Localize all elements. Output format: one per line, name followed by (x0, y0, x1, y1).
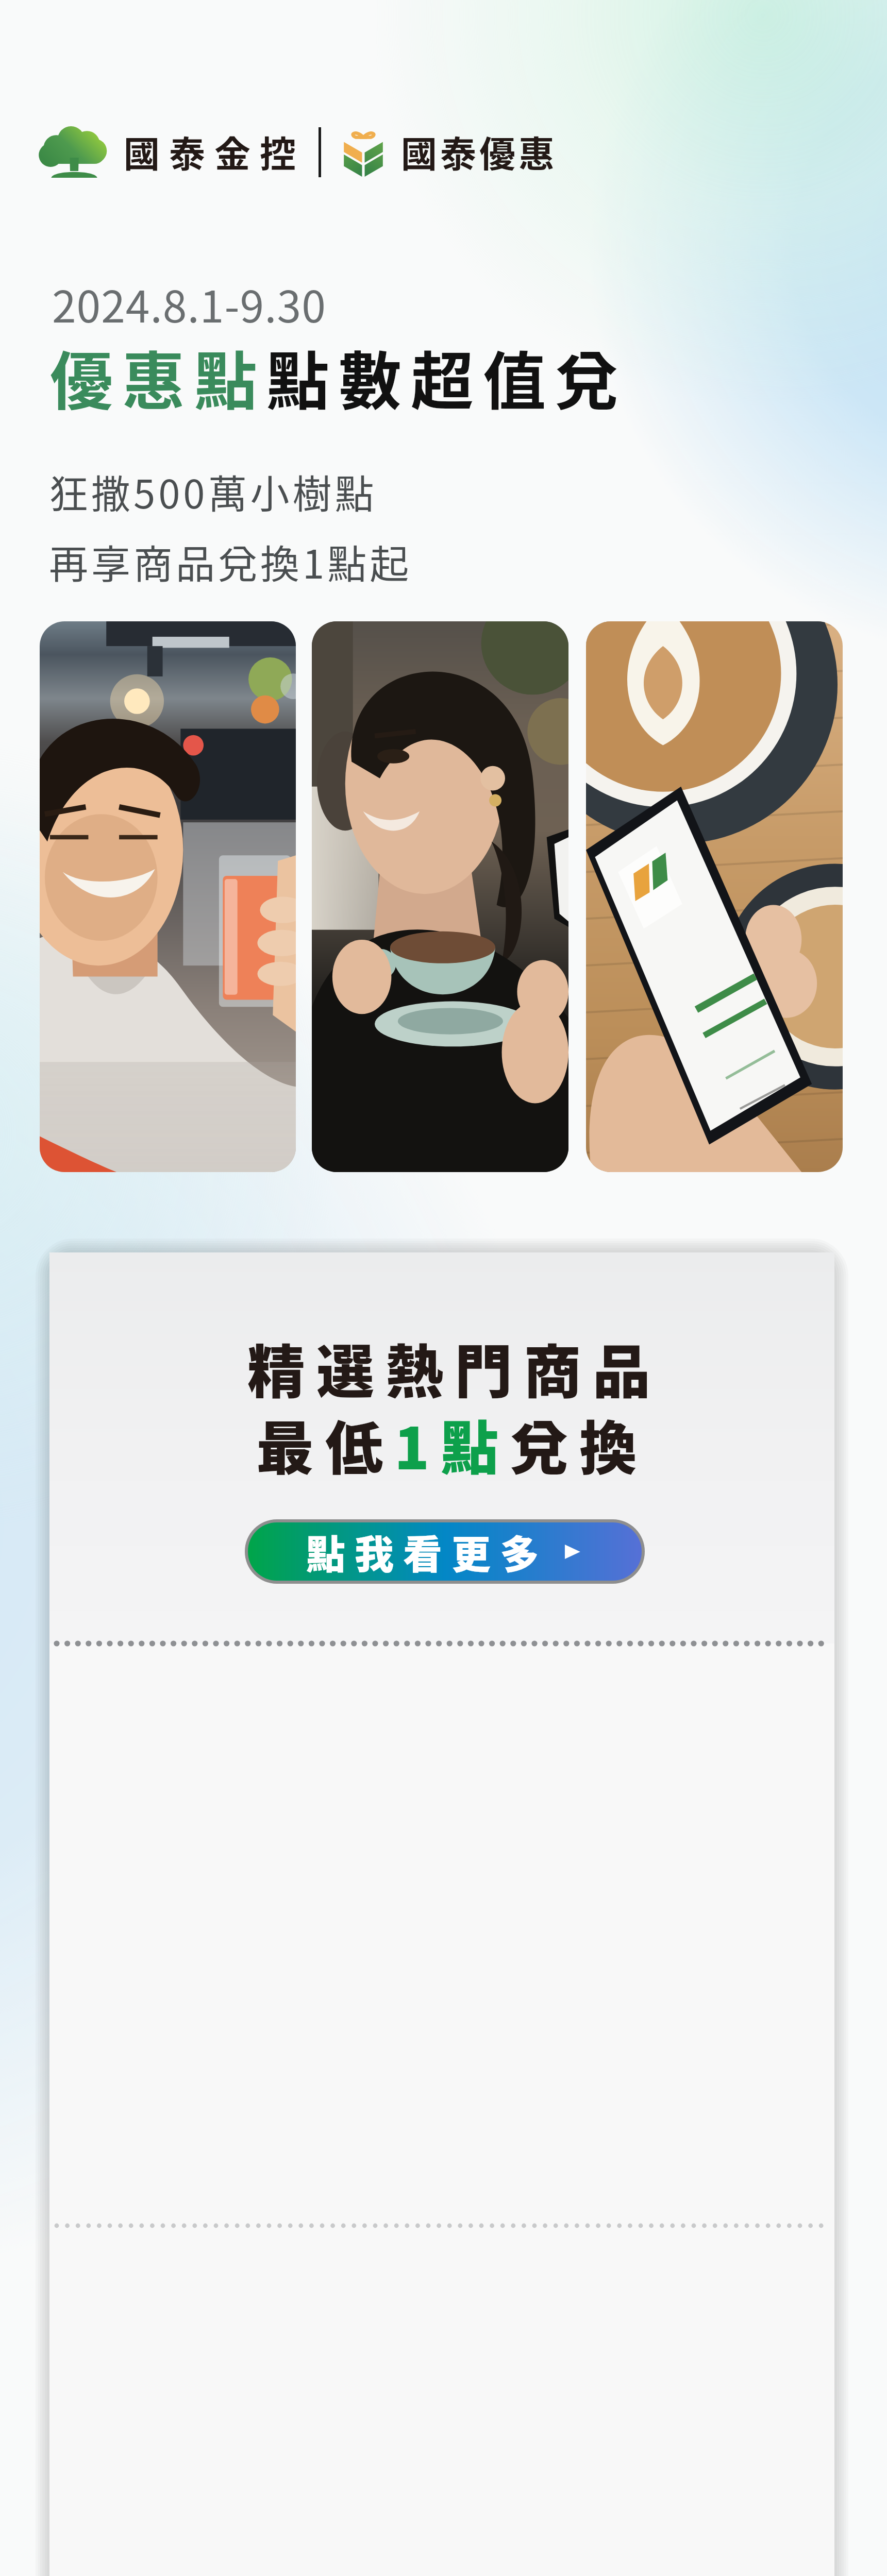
staticText: 最低 (256, 1402, 394, 1486)
staticText: 2024.8.1-9.30 (52, 273, 326, 335)
button[interactable]: 點我看更多 (248, 1522, 642, 1581)
staticText: 精選熱門商品 (247, 1326, 662, 1410)
staticText: 狂撒500萬小樹點 (49, 463, 377, 520)
staticText: 優惠點 (50, 331, 266, 422)
staticText: 國泰優惠 (401, 126, 558, 178)
staticText: 兌換 (510, 1402, 648, 1486)
staticText: 再享商品兌換1點起 (49, 533, 412, 590)
staticText: 點數超值兌 (266, 331, 627, 422)
staticText: 點我看更多 (306, 1523, 548, 1580)
staticText: 1點 (394, 1402, 510, 1486)
staticText: 國泰金控 (124, 126, 305, 178)
